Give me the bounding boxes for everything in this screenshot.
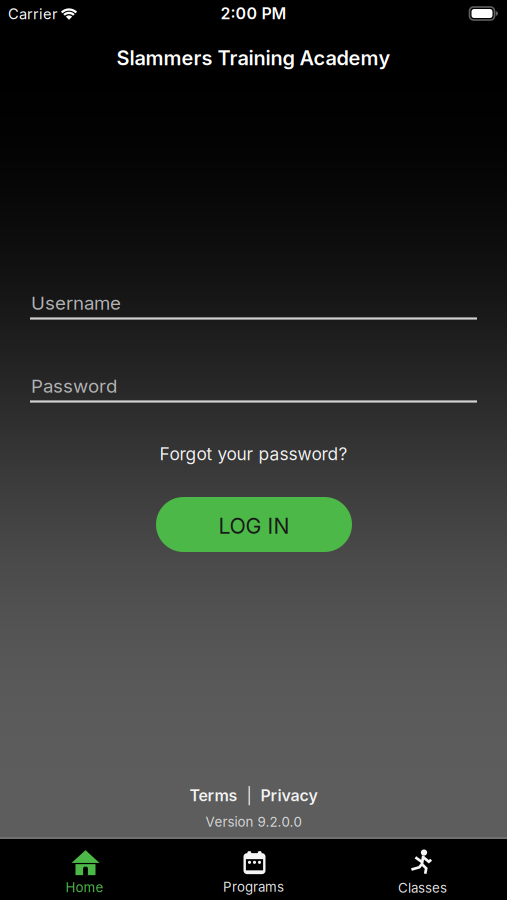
button[interactable]: Classes [338, 845, 507, 899]
button[interactable]: Programs [169, 845, 338, 899]
staticText: | [246, 786, 251, 805]
button[interactable]: Home [0, 845, 169, 899]
staticText: Password [31, 375, 117, 397]
button[interactable]: Username [0, 279, 507, 327]
staticText: Terms [189, 786, 237, 805]
staticText: Username [31, 292, 121, 314]
button[interactable]: Forgot your password? [159, 444, 347, 464]
staticText: LOG IN [218, 513, 289, 539]
button[interactable]: Privacy [260, 786, 317, 805]
staticText: Forgot your password? [159, 444, 347, 464]
button[interactable]: Terms [189, 786, 237, 805]
staticText: Privacy [260, 786, 317, 805]
staticText: Programs [223, 879, 284, 895]
button[interactable]: Password [0, 362, 507, 410]
staticText: Home [65, 880, 103, 895]
staticText: Slammers Training Academy [116, 46, 390, 70]
staticText: Classes [398, 880, 447, 896]
staticText: 2:00 PM [220, 4, 286, 23]
staticText: Version 9.2.0.0 [205, 814, 301, 830]
button[interactable]: LOG IN [156, 497, 352, 552]
staticText: Carrier [8, 5, 58, 23]
